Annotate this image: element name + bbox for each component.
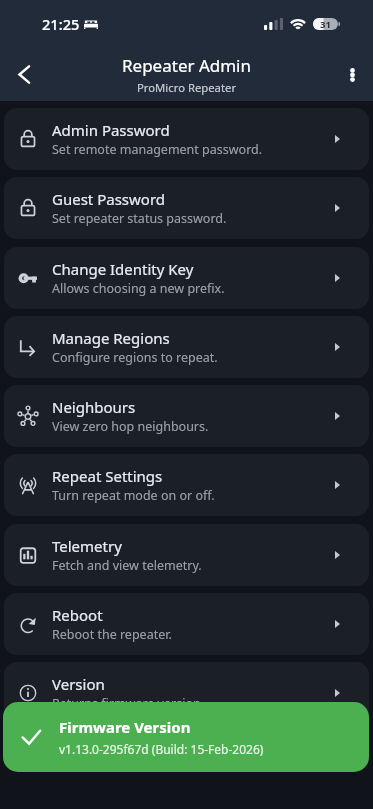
staticText: Fetch and view telemetry. — [52, 557, 202, 574]
button[interactable]: Admin Password — [4, 108, 369, 170]
staticText: Change Identity Key — [52, 259, 194, 279]
staticText: 31 — [320, 18, 331, 30]
staticText: Neighbours — [52, 397, 136, 417]
button[interactable]: Back — [0, 48, 48, 101]
staticText: Repeater Admin — [122, 54, 252, 77]
button[interactable]: Firmware Version — [3, 702, 369, 772]
staticText: Reboot the repeater. — [52, 626, 172, 643]
button[interactable]: Repeat Settings — [4, 454, 369, 516]
button[interactable]: Neighbours — [4, 385, 369, 447]
staticText: Guest Password — [52, 189, 165, 209]
staticText: Set repeater status password. — [52, 210, 227, 227]
button[interactable]: Reboot — [4, 593, 369, 655]
button[interactable]: Manage Regions — [4, 316, 369, 378]
staticText: Set remote management password. — [52, 141, 263, 158]
button[interactable]: Change Identity Key — [4, 247, 369, 309]
staticText: Version — [52, 674, 105, 694]
staticText: 21:25 — [42, 14, 80, 34]
staticText: Turn repeat mode on or off. — [52, 487, 215, 504]
staticText: Firmware Version — [59, 717, 191, 737]
staticText: Telemetry — [52, 536, 122, 556]
staticText: v1.13.0-295f67d (Build: 15-Feb-2026) — [59, 741, 264, 757]
button[interactable]: More options — [332, 48, 373, 101]
button[interactable]: Telemetry — [4, 524, 369, 586]
staticText: ProMicro Repeater — [137, 80, 237, 95]
staticText: Reboot — [52, 605, 103, 625]
button[interactable]: Version — [4, 662, 369, 724]
button[interactable]: Guest Password — [4, 177, 369, 239]
staticText: Admin Password — [52, 120, 170, 140]
staticText: Configure regions to repeat. — [52, 349, 218, 366]
staticText: Allows choosing a new prefix. — [52, 280, 225, 297]
staticText: Returns firmware version. — [52, 695, 205, 712]
staticText: Repeat Settings — [52, 466, 163, 486]
staticText: Manage Regions — [52, 328, 170, 348]
staticText: View zero hop neighbours. — [52, 418, 209, 435]
